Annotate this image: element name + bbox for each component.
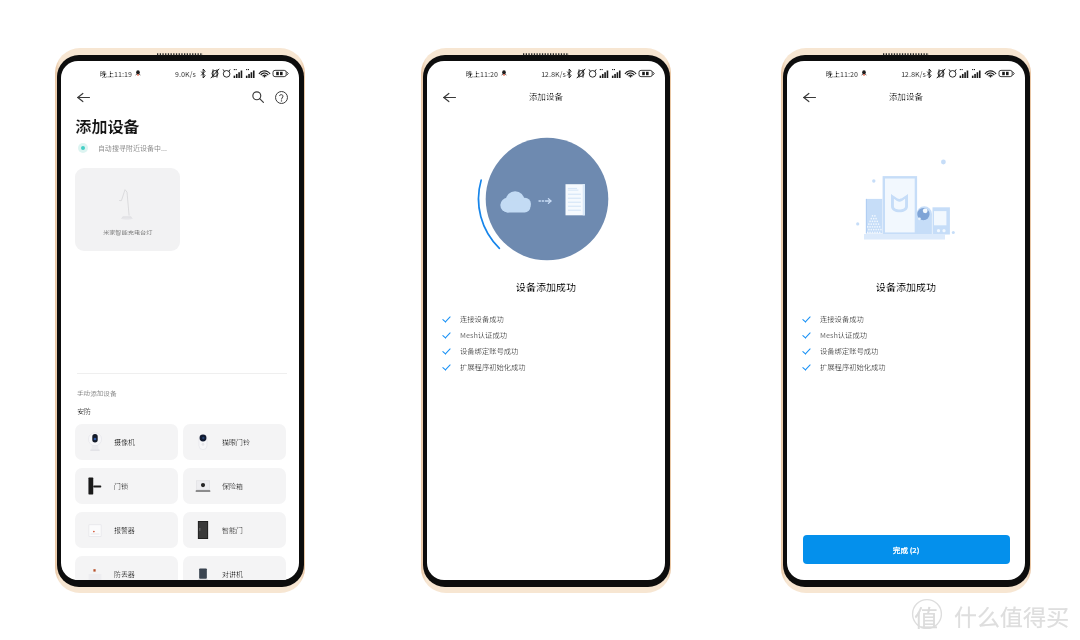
staticText: 报警器 [114,525,135,535]
staticText: 12.8K/s [901,69,926,79]
staticText: 连接设备成功 [460,314,504,325]
staticText: 自动搜寻附近设备中... [98,143,167,153]
button[interactable]: 智能门 [183,512,286,548]
staticText: 值 [914,599,938,629]
staticText: 米家智能充电台灯 [103,228,153,237]
staticText: 添加设备 [75,114,140,137]
button[interactable]: 搜索 [246,85,270,109]
staticText: 完成 (2) [893,544,920,555]
button[interactable]: 返回 [437,85,461,109]
staticText: 晚上11:20 [466,69,499,79]
staticText: 猫眼门铃 [222,437,250,447]
button[interactable]: 门锁 [75,468,178,504]
staticText: 12.8K/s [541,69,566,79]
staticText: 设备添加成功 [427,279,665,293]
staticText: 晚上11:19 [100,69,133,79]
staticText: 手动添加设备 [77,388,117,398]
button[interactable]: 返回 [71,85,95,109]
staticText: 设备绑定账号成功 [820,346,879,357]
button[interactable]: 对讲机 [183,556,286,580]
button[interactable]: 帮助 [269,85,293,109]
staticText: 安防 [77,406,91,416]
button[interactable]: 保险箱 [183,468,286,504]
staticText: 保险箱 [222,481,243,491]
staticText: Mesh认证成功 [460,330,507,341]
button[interactable]: 返回 [797,85,821,109]
button[interactable]: 完成 (2) [803,535,1010,564]
staticText: 扩展程序初始化成功 [460,362,526,373]
staticText: 9.0K/s [175,69,196,79]
staticText: 设备绑定账号成功 [460,346,519,357]
button[interactable]: 摄像机 [75,424,178,460]
staticText: 摄像机 [114,437,135,447]
staticText: 连接设备成功 [820,314,864,325]
staticText: 添加设备 [427,90,665,102]
button[interactable]: 米家智能充电台灯 [75,168,180,251]
staticText: 添加设备 [787,90,1025,102]
staticText: 什么值得买 [954,599,1069,632]
staticText: Mesh认证成功 [820,330,867,341]
staticText: 防丢器 [114,569,135,579]
button[interactable]: 防丢器 [75,556,178,580]
staticText: 设备添加成功 [787,279,1025,293]
staticText: 智能门 [222,525,243,535]
staticText: 对讲机 [222,569,243,579]
staticText: 扩展程序初始化成功 [820,362,886,373]
button[interactable]: 猫眼门铃 [183,424,286,460]
staticText: 晚上11:20 [826,69,859,79]
button[interactable]: 报警器 [75,512,178,548]
staticText: 门锁 [114,481,128,491]
